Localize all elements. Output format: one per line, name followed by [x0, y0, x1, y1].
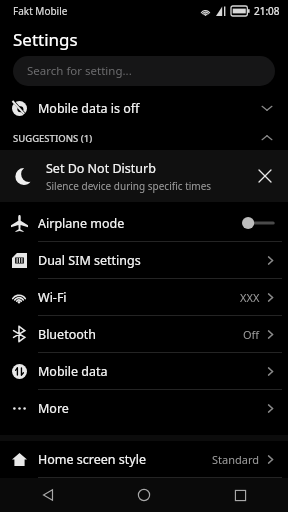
staticText: Airplane mode [38, 215, 125, 232]
button[interactable]: Home screen style [0, 441, 288, 477]
button[interactable]: Search for setting... [13, 56, 275, 86]
button[interactable]: Bluetooth [0, 316, 288, 352]
staticText: Silence device during specific times [46, 179, 212, 193]
staticText: Bluetooth [38, 326, 97, 343]
button[interactable]: Dismiss suggestion [248, 159, 282, 193]
staticText: 21:08 [254, 4, 280, 18]
staticText: Fakt Mobile [13, 4, 68, 18]
staticText: Settings [13, 28, 78, 51]
staticText: More [38, 400, 69, 417]
button[interactable]: Dual SIM settings [0, 242, 288, 278]
button[interactable]: Airplane mode toggle [239, 214, 277, 232]
button[interactable]: Airplane mode [0, 205, 288, 241]
staticText: Set Do Not Disturb [46, 160, 156, 177]
staticText: Search for setting... [27, 63, 132, 79]
button[interactable]: More [0, 390, 288, 426]
staticText: Wi-Fi [38, 289, 67, 306]
button[interactable]: Recent apps [192, 478, 288, 512]
button[interactable]: Home [96, 478, 192, 512]
staticText: Off [243, 327, 260, 342]
button[interactable]: Set Do Not Disturb [0, 150, 288, 202]
staticText: Mobile data is off [38, 100, 140, 117]
button[interactable]: Mobile data [0, 353, 288, 389]
button[interactable]: Wi-Fi [0, 279, 288, 315]
staticText: XXX [240, 290, 260, 305]
button[interactable]: Back [0, 478, 96, 512]
staticText: Mobile data [38, 363, 108, 380]
staticText: Home screen style [38, 451, 146, 468]
button[interactable]: SUGGESTIONS (1) [0, 126, 288, 150]
staticText: Standard [212, 452, 260, 467]
staticText: Dual SIM settings [38, 252, 141, 269]
staticText: SUGGESTIONS (1) [13, 132, 93, 145]
button[interactable]: Mobile data is off [0, 90, 288, 126]
